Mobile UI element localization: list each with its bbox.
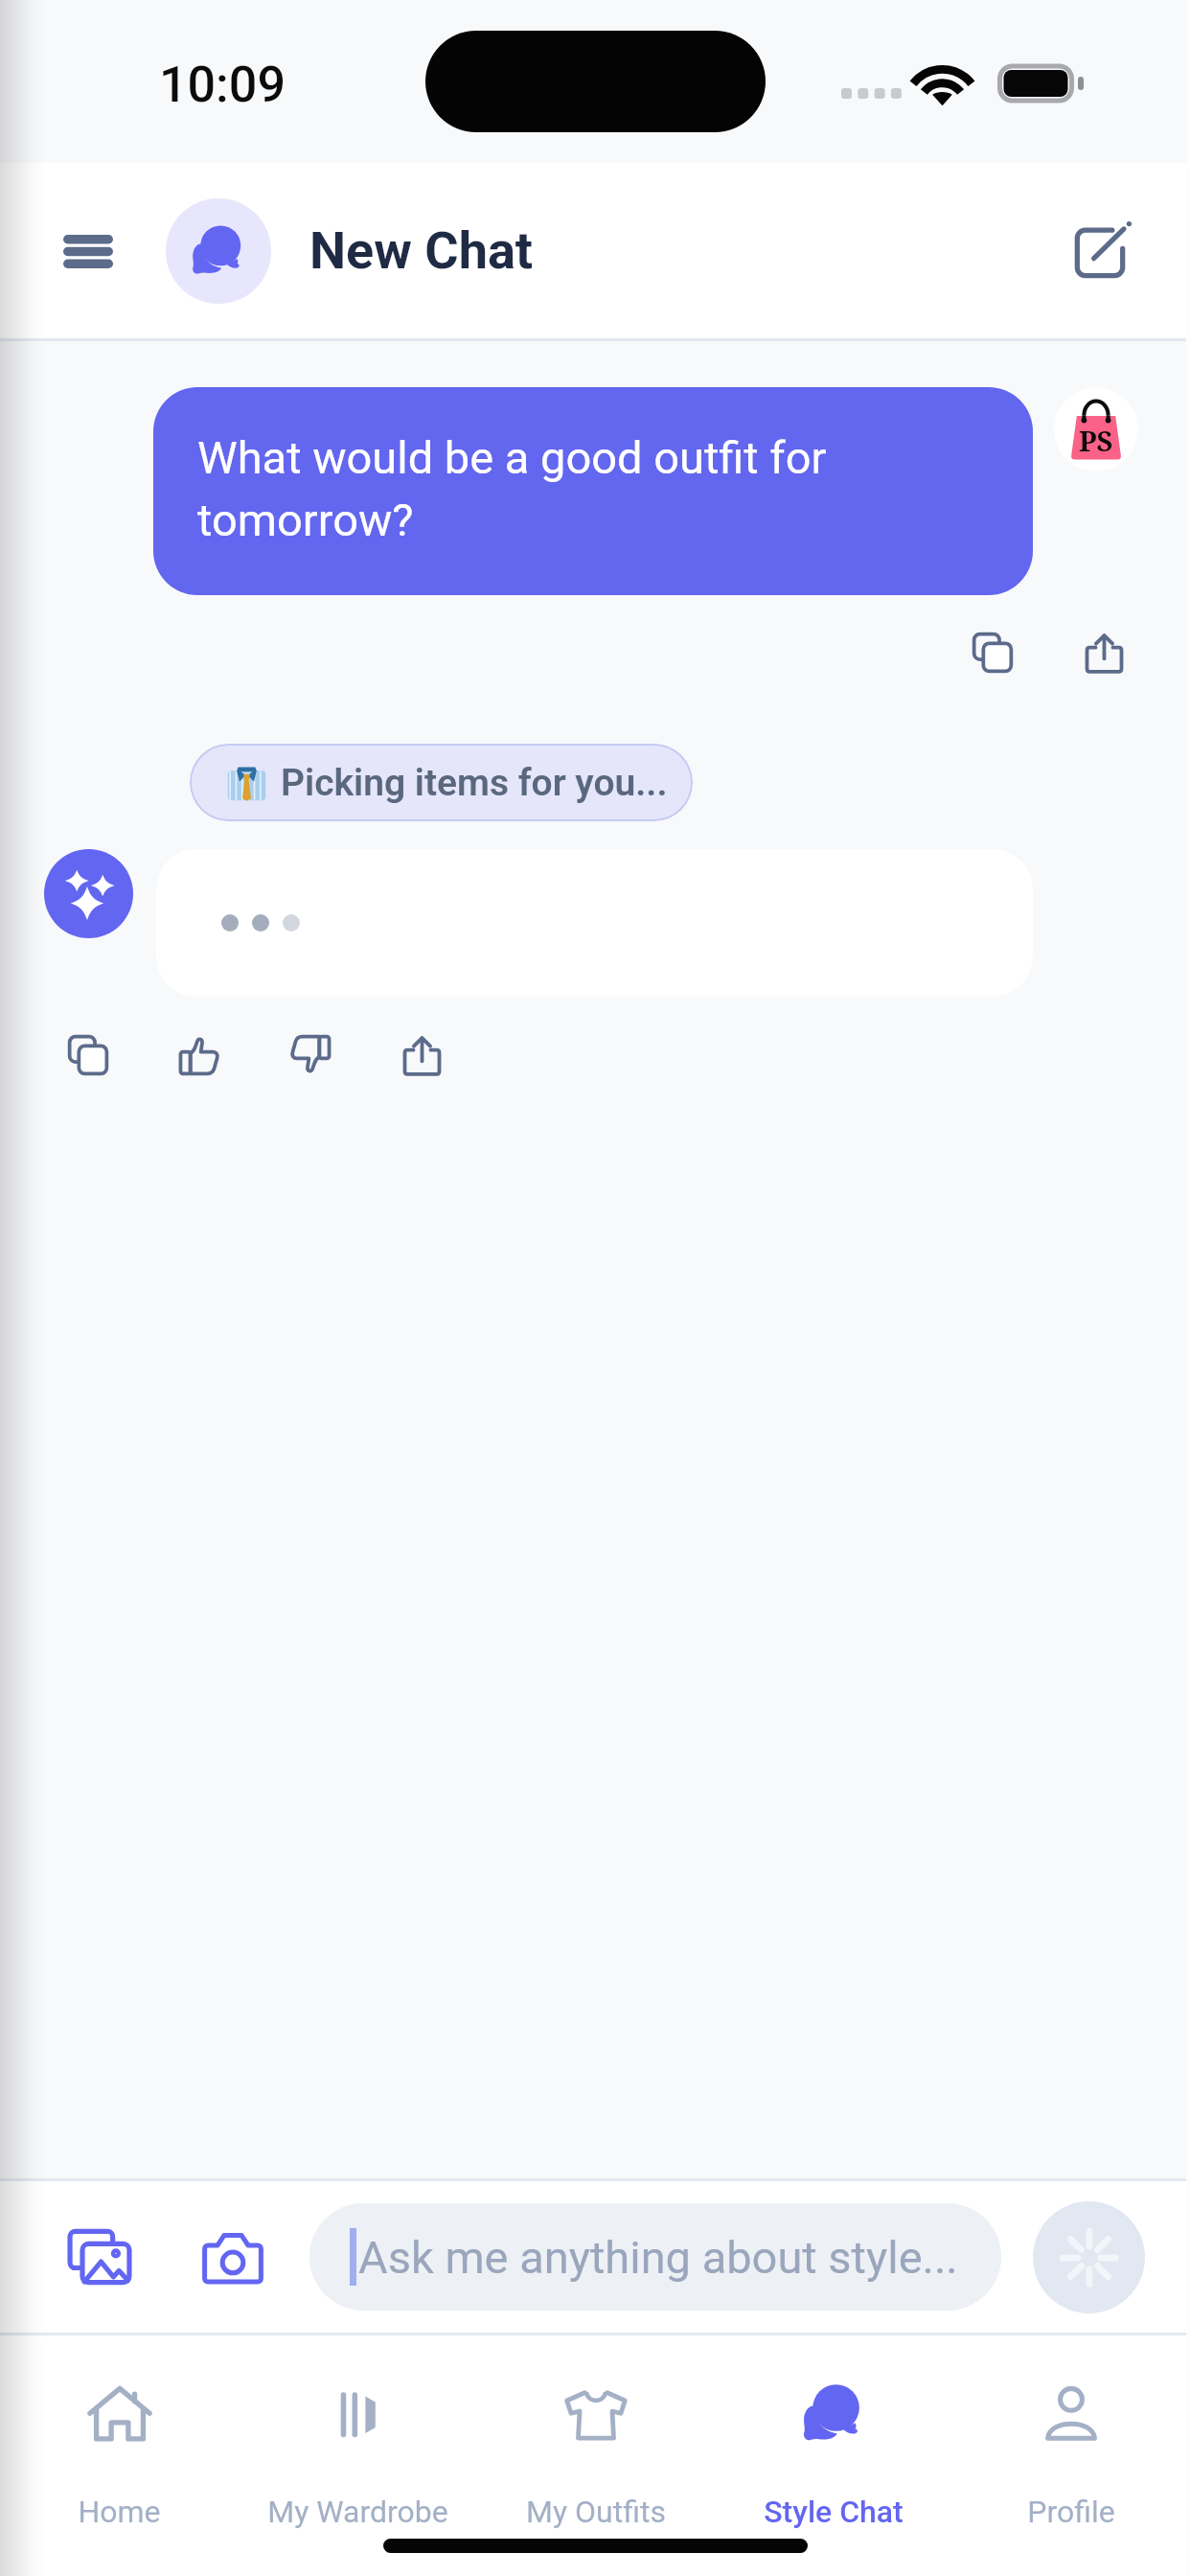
button[interactable]: Home (0, 2379, 239, 2530)
button[interactable]: Menu (45, 208, 131, 294)
button[interactable] (156, 849, 1033, 997)
staticText: New Chat (309, 220, 534, 281)
staticText: Style Chat (764, 2494, 904, 2530)
staticText: Home (78, 2494, 161, 2530)
button[interactable]: Ask me anything about style... (309, 2203, 1001, 2311)
button[interactable]: My Outfits (477, 2379, 715, 2530)
staticText: Profile (1027, 2494, 1115, 2530)
button[interactable]: Share (366, 1000, 477, 1111)
staticText: My Outfits (526, 2494, 666, 2530)
button[interactable]: Send (1033, 2201, 1145, 2313)
button[interactable]: Profile (952, 2379, 1190, 2530)
staticText: What would be a good outfit for tomorrow… (197, 431, 989, 547)
button[interactable]: My Wardrobe (239, 2379, 477, 2530)
button[interactable]: New chat (1057, 208, 1143, 294)
button[interactable]: Copy (950, 610, 1035, 695)
staticText: Ask me anything about style... (358, 2231, 958, 2284)
button[interactable]: Picking items for you... (190, 744, 693, 821)
button[interactable]: Share (1062, 610, 1146, 695)
staticText: 10:09 (159, 56, 286, 114)
button[interactable]: Copy (33, 1000, 144, 1111)
staticText: PS (1079, 422, 1113, 459)
button[interactable]: Dislike (255, 1000, 366, 1111)
button[interactable]: Like (144, 1000, 255, 1111)
button[interactable]: Add photo (55, 2212, 145, 2302)
button[interactable]: What would be a good outfit for tomorrow… (153, 387, 1033, 595)
staticText: My Wardrobe (267, 2494, 448, 2530)
button[interactable]: Style Chat (715, 2379, 952, 2530)
button[interactable]: Camera (188, 2212, 278, 2302)
staticText: Picking items for you... (281, 761, 668, 805)
